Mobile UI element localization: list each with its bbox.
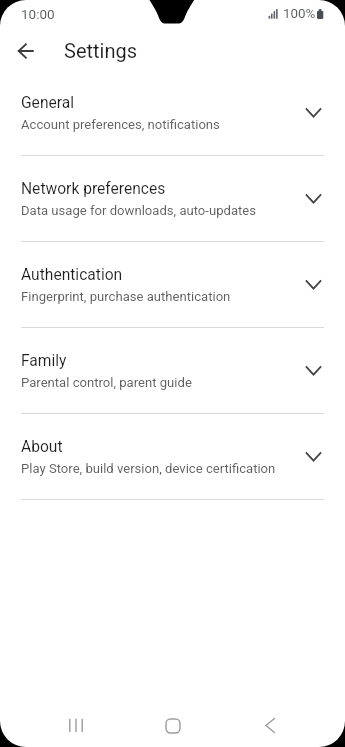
- staticText: Account preferences, notifications: [21, 117, 220, 132]
- button[interactable]: General: [0, 70, 345, 156]
- staticText: Authentication: [21, 266, 123, 284]
- staticText: About: [21, 438, 63, 456]
- button[interactable]: Back: [5, 31, 45, 71]
- button[interactable]: Network preferences: [0, 156, 345, 242]
- staticText: Network preferences: [21, 180, 166, 198]
- staticText: General: [21, 94, 75, 112]
- button[interactable]: Authentication: [0, 242, 345, 328]
- staticText: Parental control, parent guide: [21, 375, 192, 390]
- staticText: Play Store, build version, device certif…: [21, 461, 276, 476]
- staticText: Family: [21, 352, 67, 370]
- staticText: 10:00: [21, 6, 55, 22]
- button[interactable]: Home: [149, 703, 197, 747]
- button[interactable]: Recent apps: [52, 703, 100, 747]
- button[interactable]: Back: [246, 703, 294, 747]
- staticText: Fingerprint, purchase authentication: [21, 289, 231, 304]
- staticText: Data usage for downloads, auto-updates: [21, 203, 257, 218]
- staticText: Settings: [64, 39, 138, 62]
- button[interactable]: Family: [0, 328, 345, 414]
- staticText: 100%: [283, 6, 316, 22]
- button[interactable]: About: [0, 414, 345, 500]
